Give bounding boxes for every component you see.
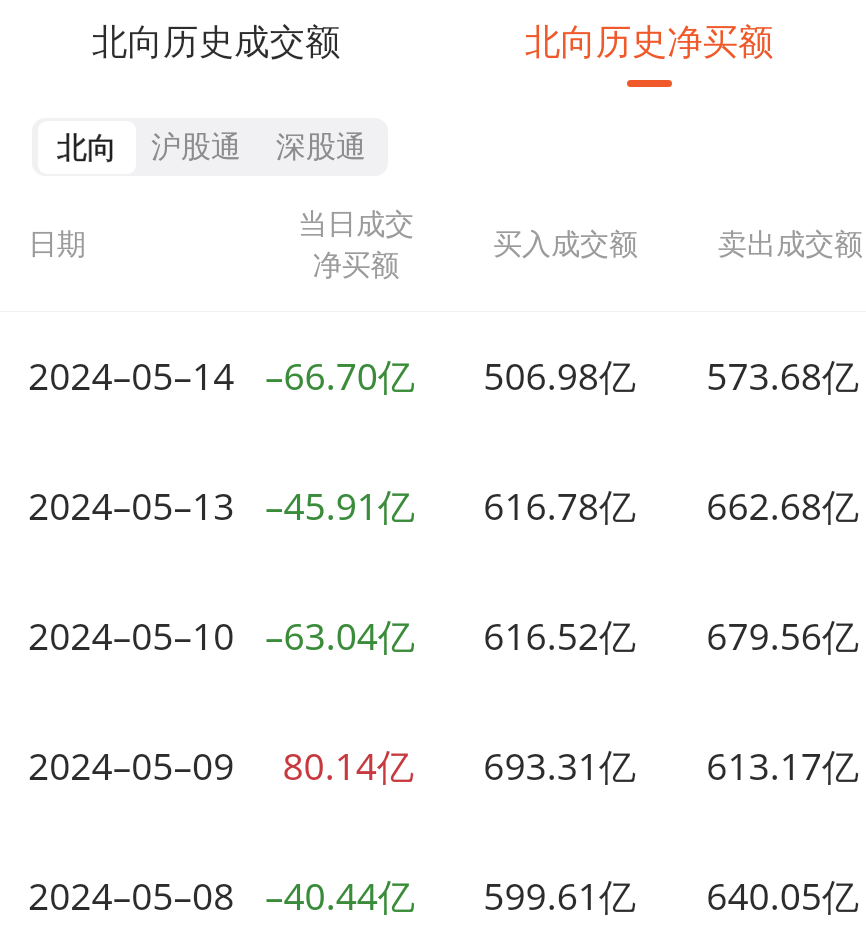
button[interactable]: 沪股通 — [142, 118, 257, 176]
button[interactable]: 北向历史成交额 — [0, 0, 433, 118]
staticText: 卖出成交额 — [718, 226, 863, 263]
button[interactable]: 2024–05–14 — [0, 310, 866, 440]
button[interactable]: 深股通 — [257, 118, 388, 176]
staticText: 573.68亿 — [636, 350, 859, 401]
staticText: 北向 — [57, 129, 117, 167]
staticText: 北向 — [57, 129, 117, 167]
staticText: 679.56亿 — [636, 610, 859, 661]
staticText: 613.17亿 — [636, 740, 859, 791]
button[interactable]: 北向历史净买额 — [433, 0, 866, 118]
staticText: 2024–05–10 — [28, 610, 264, 660]
button[interactable]: 2024–05–13 — [0, 440, 866, 570]
staticText: 506.98亿 — [414, 350, 636, 401]
button[interactable]: 2024–05–10 — [0, 570, 866, 700]
staticText: 2024–05–13 — [28, 480, 264, 530]
staticText: 深股通 — [276, 128, 366, 166]
staticText: 日期 — [28, 226, 86, 263]
staticText: 616.52亿 — [414, 610, 636, 661]
button[interactable]: 2024–05–09 — [0, 700, 866, 830]
staticText: 2024–05–09 — [28, 740, 264, 790]
button[interactable]: 2024–05–08 — [0, 830, 866, 947]
staticText: 662.68亿 — [636, 480, 859, 531]
staticText: 80.14亿 — [264, 740, 414, 791]
button[interactable]: 北向 — [38, 121, 136, 174]
staticText: 买入成交额 — [493, 226, 638, 263]
staticText: 2024–05–14 — [28, 350, 264, 400]
staticText: –40.44亿 — [264, 870, 414, 921]
staticText: 616.78亿 — [414, 480, 636, 531]
staticText: 640.05亿 — [636, 870, 859, 921]
staticText: –66.70亿 — [264, 350, 414, 401]
staticText: 599.61亿 — [414, 870, 636, 921]
staticText: 北向历史成交额 — [92, 20, 341, 65]
staticText: 当日成交 净买额 — [298, 206, 414, 283]
staticText: 沪股通 — [151, 128, 241, 166]
staticText: 693.31亿 — [414, 740, 636, 791]
staticText: –45.91亿 — [264, 480, 414, 531]
staticText: –63.04亿 — [264, 610, 414, 661]
staticText: 2024–05–08 — [28, 870, 264, 920]
staticText: 北向历史净买额 — [525, 20, 774, 65]
